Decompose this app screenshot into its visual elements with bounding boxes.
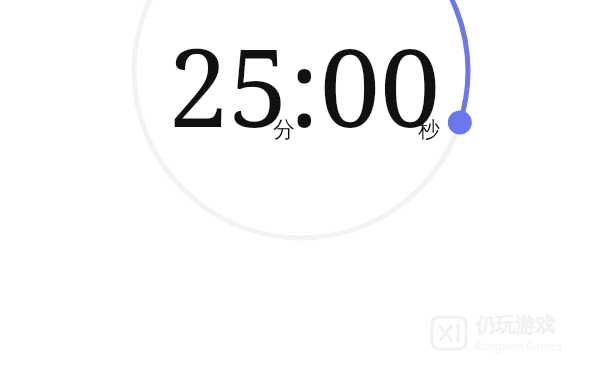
staticText: 秒 bbox=[418, 116, 440, 144]
staticText: 分 bbox=[273, 116, 295, 144]
staticText: 25:00 bbox=[168, 12, 441, 132]
staticText: 仍玩游戏 bbox=[475, 313, 555, 338]
button[interactable]: 25:00 bbox=[168, 12, 444, 132]
staticText: Rengwan Games bbox=[475, 338, 563, 353]
button[interactable]: Timer dial bbox=[0, 0, 600, 368]
